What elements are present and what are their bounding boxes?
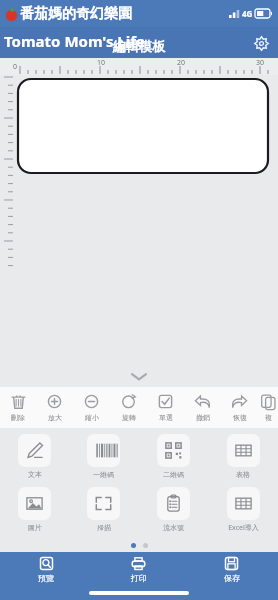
button[interactable]: Excel導入 xyxy=(208,487,278,533)
button[interactable]: 旋轉 xyxy=(110,387,147,428)
staticText: 番茄媽的奇幻樂園 xyxy=(20,5,132,23)
button[interactable]: 預覽 xyxy=(0,552,92,586)
staticText: 縮小 xyxy=(85,413,99,422)
button[interactable]: Expand xyxy=(0,365,278,387)
staticText: 旋轉 xyxy=(122,413,136,422)
staticText: 掃描 xyxy=(97,523,111,532)
staticText: 撤銷 xyxy=(196,413,210,422)
button[interactable]: 保存 xyxy=(185,552,278,586)
button[interactable]: 二維碼 xyxy=(138,434,208,479)
button[interactable]: 流水號 xyxy=(138,487,208,532)
staticText: 文本 xyxy=(28,470,42,479)
staticText: Tomato Mom's Life xyxy=(4,31,145,51)
staticText: 保存 xyxy=(224,573,240,583)
button[interactable] xyxy=(18,79,268,173)
button[interactable]: 圖片 xyxy=(0,487,69,532)
button[interactable]: 單選 xyxy=(147,387,184,428)
staticText: 20 xyxy=(177,58,186,68)
staticText: 恢復 xyxy=(233,413,247,422)
staticText: Excel導入 xyxy=(228,523,259,533)
button[interactable]: 放大 xyxy=(36,387,73,428)
staticText: 預覽 xyxy=(38,573,54,583)
staticText: 刪除 xyxy=(11,413,25,422)
staticText: 放大 xyxy=(48,413,62,422)
button[interactable]: Settings xyxy=(250,32,272,54)
staticText: 複 xyxy=(265,413,272,422)
button[interactable]: 複 xyxy=(258,387,278,428)
staticText: 30 xyxy=(256,58,265,68)
staticText: 流水號 xyxy=(163,523,184,532)
button[interactable]: 掃描 xyxy=(69,487,138,532)
staticText: 打印 xyxy=(131,573,147,583)
button[interactable]: 一維碼 xyxy=(69,434,138,479)
button[interactable]: 恢復 xyxy=(221,387,258,428)
button[interactable]: 表格 xyxy=(208,434,278,479)
staticText: 4G xyxy=(242,8,253,19)
button[interactable]: 縮小 xyxy=(73,387,110,428)
staticText: 單選 xyxy=(159,413,173,422)
staticText: 二維碼 xyxy=(163,470,184,479)
button[interactable]: 文本 xyxy=(0,434,69,479)
button[interactable]: 打印 xyxy=(92,552,185,586)
staticText: 0 xyxy=(13,62,18,72)
staticText: 編輯模板 xyxy=(113,38,165,54)
staticText: 表格 xyxy=(236,470,250,479)
button[interactable]: 刪除 xyxy=(0,387,36,428)
staticText: 圖片 xyxy=(28,523,42,532)
staticText: 一維碼 xyxy=(93,470,114,479)
staticText: 10 xyxy=(97,58,106,68)
button[interactable]: 撤銷 xyxy=(184,387,221,428)
